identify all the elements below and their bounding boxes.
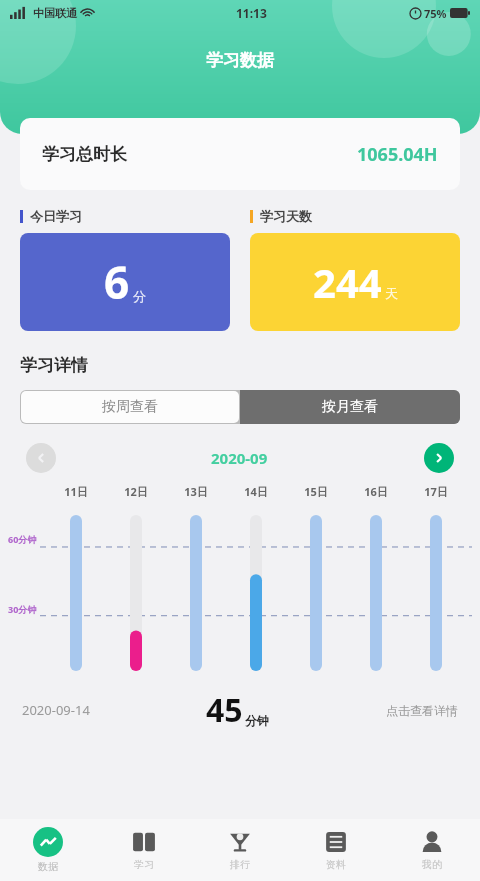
staticText: 按月查看 xyxy=(322,398,378,416)
staticText: 天 xyxy=(385,285,398,301)
button[interactable]: 244 xyxy=(250,233,460,331)
staticText: 45 xyxy=(206,688,243,732)
staticText: 中国联通 xyxy=(33,6,77,20)
staticText: 分钟 xyxy=(245,713,269,728)
staticText: 30分钟 xyxy=(8,603,37,615)
staticText: 17日 xyxy=(424,484,448,499)
staticText: 244 xyxy=(313,255,382,309)
staticText: 按周查看 xyxy=(102,398,158,416)
staticText: 学习数据 xyxy=(206,50,274,71)
staticText: 2020-09-14 xyxy=(22,701,90,719)
staticText: 排行 xyxy=(230,858,250,871)
staticText: 11日 xyxy=(64,484,88,499)
staticText: 16日 xyxy=(364,484,388,499)
staticText: 15日 xyxy=(304,484,328,499)
staticText: 学习总时长 xyxy=(42,144,127,165)
staticText: 75% xyxy=(424,6,447,21)
staticText: 60分钟 xyxy=(8,533,37,545)
button[interactable]: 6 xyxy=(20,233,230,331)
button[interactable]: 2020-09-14 xyxy=(0,685,480,735)
button[interactable]: 按周查看 xyxy=(21,391,239,423)
button[interactable]: Next month xyxy=(424,443,454,473)
staticText: 资料 xyxy=(326,858,346,871)
staticText: 我的 xyxy=(422,858,442,871)
button[interactable]: 按月查看 xyxy=(240,390,460,424)
button[interactable]: 数据 xyxy=(0,819,96,881)
button[interactable]: 学习总时长 xyxy=(20,118,460,190)
staticText: 学习详情 xyxy=(20,355,88,376)
button[interactable]: 学习 xyxy=(96,819,192,881)
button[interactable]: 资料 xyxy=(288,819,384,881)
staticText: 今日学习 xyxy=(30,208,82,224)
staticText: 数据 xyxy=(38,860,58,873)
staticText: 14日 xyxy=(244,484,268,499)
staticText: 分 xyxy=(133,288,146,304)
staticText: 11:13 xyxy=(236,5,267,21)
staticText: 13日 xyxy=(184,484,208,499)
button[interactable]: Previous month xyxy=(26,443,56,473)
staticText: 学习天数 xyxy=(260,208,312,224)
staticText: 12日 xyxy=(124,484,148,499)
staticText: 2020-09 xyxy=(211,448,268,468)
button[interactable]: 排行 xyxy=(192,819,288,881)
staticText: 学习 xyxy=(134,858,154,871)
staticText: 1065.04H xyxy=(357,142,438,167)
button[interactable]: 我的 xyxy=(384,819,480,881)
staticText: 点击查看详情 xyxy=(386,703,458,718)
staticText: 6 xyxy=(104,252,130,312)
